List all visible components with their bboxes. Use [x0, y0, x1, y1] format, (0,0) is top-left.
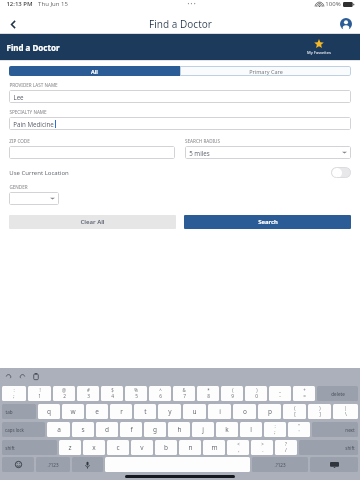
button[interactable]: z	[59, 440, 81, 455]
button[interactable]: Use Current Location toggle	[331, 167, 351, 178]
button[interactable]: _	[269, 386, 291, 401]
button[interactable]: Back	[4, 15, 22, 33]
button[interactable]: @	[53, 386, 75, 401]
staticText: (	[294, 405, 296, 411]
button[interactable]: h	[168, 422, 190, 437]
button[interactable]: ^	[149, 386, 171, 401]
button[interactable]: j	[192, 422, 214, 437]
button[interactable]: Account	[337, 15, 355, 33]
button[interactable]: a	[47, 422, 70, 437]
button[interactable]: All	[9, 66, 180, 76]
button[interactable]: y	[158, 404, 181, 419]
button[interactable]: .?123	[252, 457, 308, 472]
button[interactable]: )	[245, 386, 267, 401]
button[interactable]: t	[134, 404, 156, 419]
button[interactable]: Pain Medicine	[9, 117, 351, 130]
button[interactable]: p	[258, 404, 281, 419]
button[interactable]: Use Current Location	[9, 167, 351, 178]
button[interactable]: e	[86, 404, 108, 419]
staticText: 5	[135, 393, 138, 400]
staticText: w	[70, 407, 76, 416]
button[interactable]: tab	[2, 404, 36, 419]
staticText: shift	[345, 445, 355, 451]
staticText: *	[207, 387, 210, 393]
button[interactable]: *	[197, 386, 219, 401]
button[interactable]: n	[179, 440, 201, 455]
button[interactable]: Clear All	[9, 215, 176, 229]
button[interactable]	[9, 192, 59, 205]
staticText: x	[92, 443, 96, 452]
button[interactable]: &	[173, 386, 195, 401]
staticText: GENDER	[9, 184, 28, 190]
button[interactable]: :	[264, 422, 286, 437]
button[interactable]: <	[227, 440, 249, 455]
button[interactable]: g	[144, 422, 166, 437]
staticText: t	[144, 407, 147, 416]
staticText: tab	[5, 409, 13, 415]
staticText: Lee	[13, 93, 24, 101]
staticText: 3	[87, 393, 90, 400]
staticText: .?123	[274, 462, 286, 468]
button[interactable]: Search	[184, 215, 351, 229]
button[interactable]: v	[131, 440, 153, 455]
staticText: .?123	[47, 462, 59, 468]
button[interactable]: c	[107, 440, 129, 455]
button[interactable]: "	[288, 422, 310, 437]
button[interactable]: ?	[275, 440, 297, 455]
staticText: shift	[5, 445, 15, 451]
button[interactable]: q	[38, 404, 60, 419]
button[interactable]: Lee	[9, 90, 351, 103]
button[interactable]: o	[233, 404, 256, 419]
button[interactable]: >	[251, 440, 273, 455]
staticText: s	[81, 425, 85, 434]
button[interactable]: +	[293, 386, 315, 401]
button[interactable]: (	[221, 386, 243, 401]
staticText: =	[303, 393, 306, 400]
button[interactable]: x	[83, 440, 105, 455]
button[interactable]: u	[183, 404, 206, 419]
button[interactable]: :	[2, 386, 26, 401]
button[interactable]: caps lock	[2, 422, 45, 437]
button[interactable]: r	[110, 404, 132, 419]
button[interactable]: #	[77, 386, 99, 401]
staticText: Use Current Location	[9, 169, 69, 177]
staticText: e	[95, 407, 99, 416]
button[interactable]: delete	[317, 386, 358, 401]
staticText: 6	[159, 393, 162, 400]
button[interactable]: |	[333, 404, 358, 419]
button[interactable]: i	[208, 404, 231, 419]
staticText: 0	[255, 393, 258, 400]
button[interactable]: $	[101, 386, 123, 401]
button[interactable]: Emoji	[2, 457, 34, 472]
button[interactable]: k	[216, 422, 238, 437]
staticText: 2	[63, 393, 66, 400]
button[interactable]: shift	[299, 440, 358, 455]
button[interactable]: s	[72, 422, 94, 437]
button[interactable]: Dictation	[72, 457, 103, 472]
staticText: g	[153, 425, 157, 434]
staticText: "	[298, 423, 300, 429]
button[interactable]: Primary Care	[180, 66, 351, 76]
button[interactable]: %	[125, 386, 147, 401]
staticText: PROVIDER LAST NAME	[9, 82, 58, 88]
button[interactable]: d	[96, 422, 118, 437]
button[interactable]: shift	[2, 440, 57, 455]
button[interactable]: (	[283, 404, 306, 419]
button[interactable]: f	[120, 422, 142, 437]
staticText: #	[87, 387, 90, 393]
button[interactable]	[9, 146, 175, 159]
button[interactable]: !	[28, 386, 51, 401]
button[interactable]: next	[312, 422, 358, 437]
button[interactable]: 5 miles	[185, 146, 351, 159]
button[interactable]: My Favorites	[304, 37, 334, 57]
button[interactable]: .?123	[36, 457, 70, 472]
button[interactable]: )	[308, 404, 331, 419]
staticText: 8	[207, 393, 210, 400]
button[interactable]: Hide keyboard	[310, 457, 358, 472]
button[interactable]: w	[62, 404, 84, 419]
staticText: v	[140, 443, 144, 452]
button[interactable]: l	[240, 422, 262, 437]
button[interactable]: m	[203, 440, 225, 455]
button[interactable]: b	[155, 440, 177, 455]
